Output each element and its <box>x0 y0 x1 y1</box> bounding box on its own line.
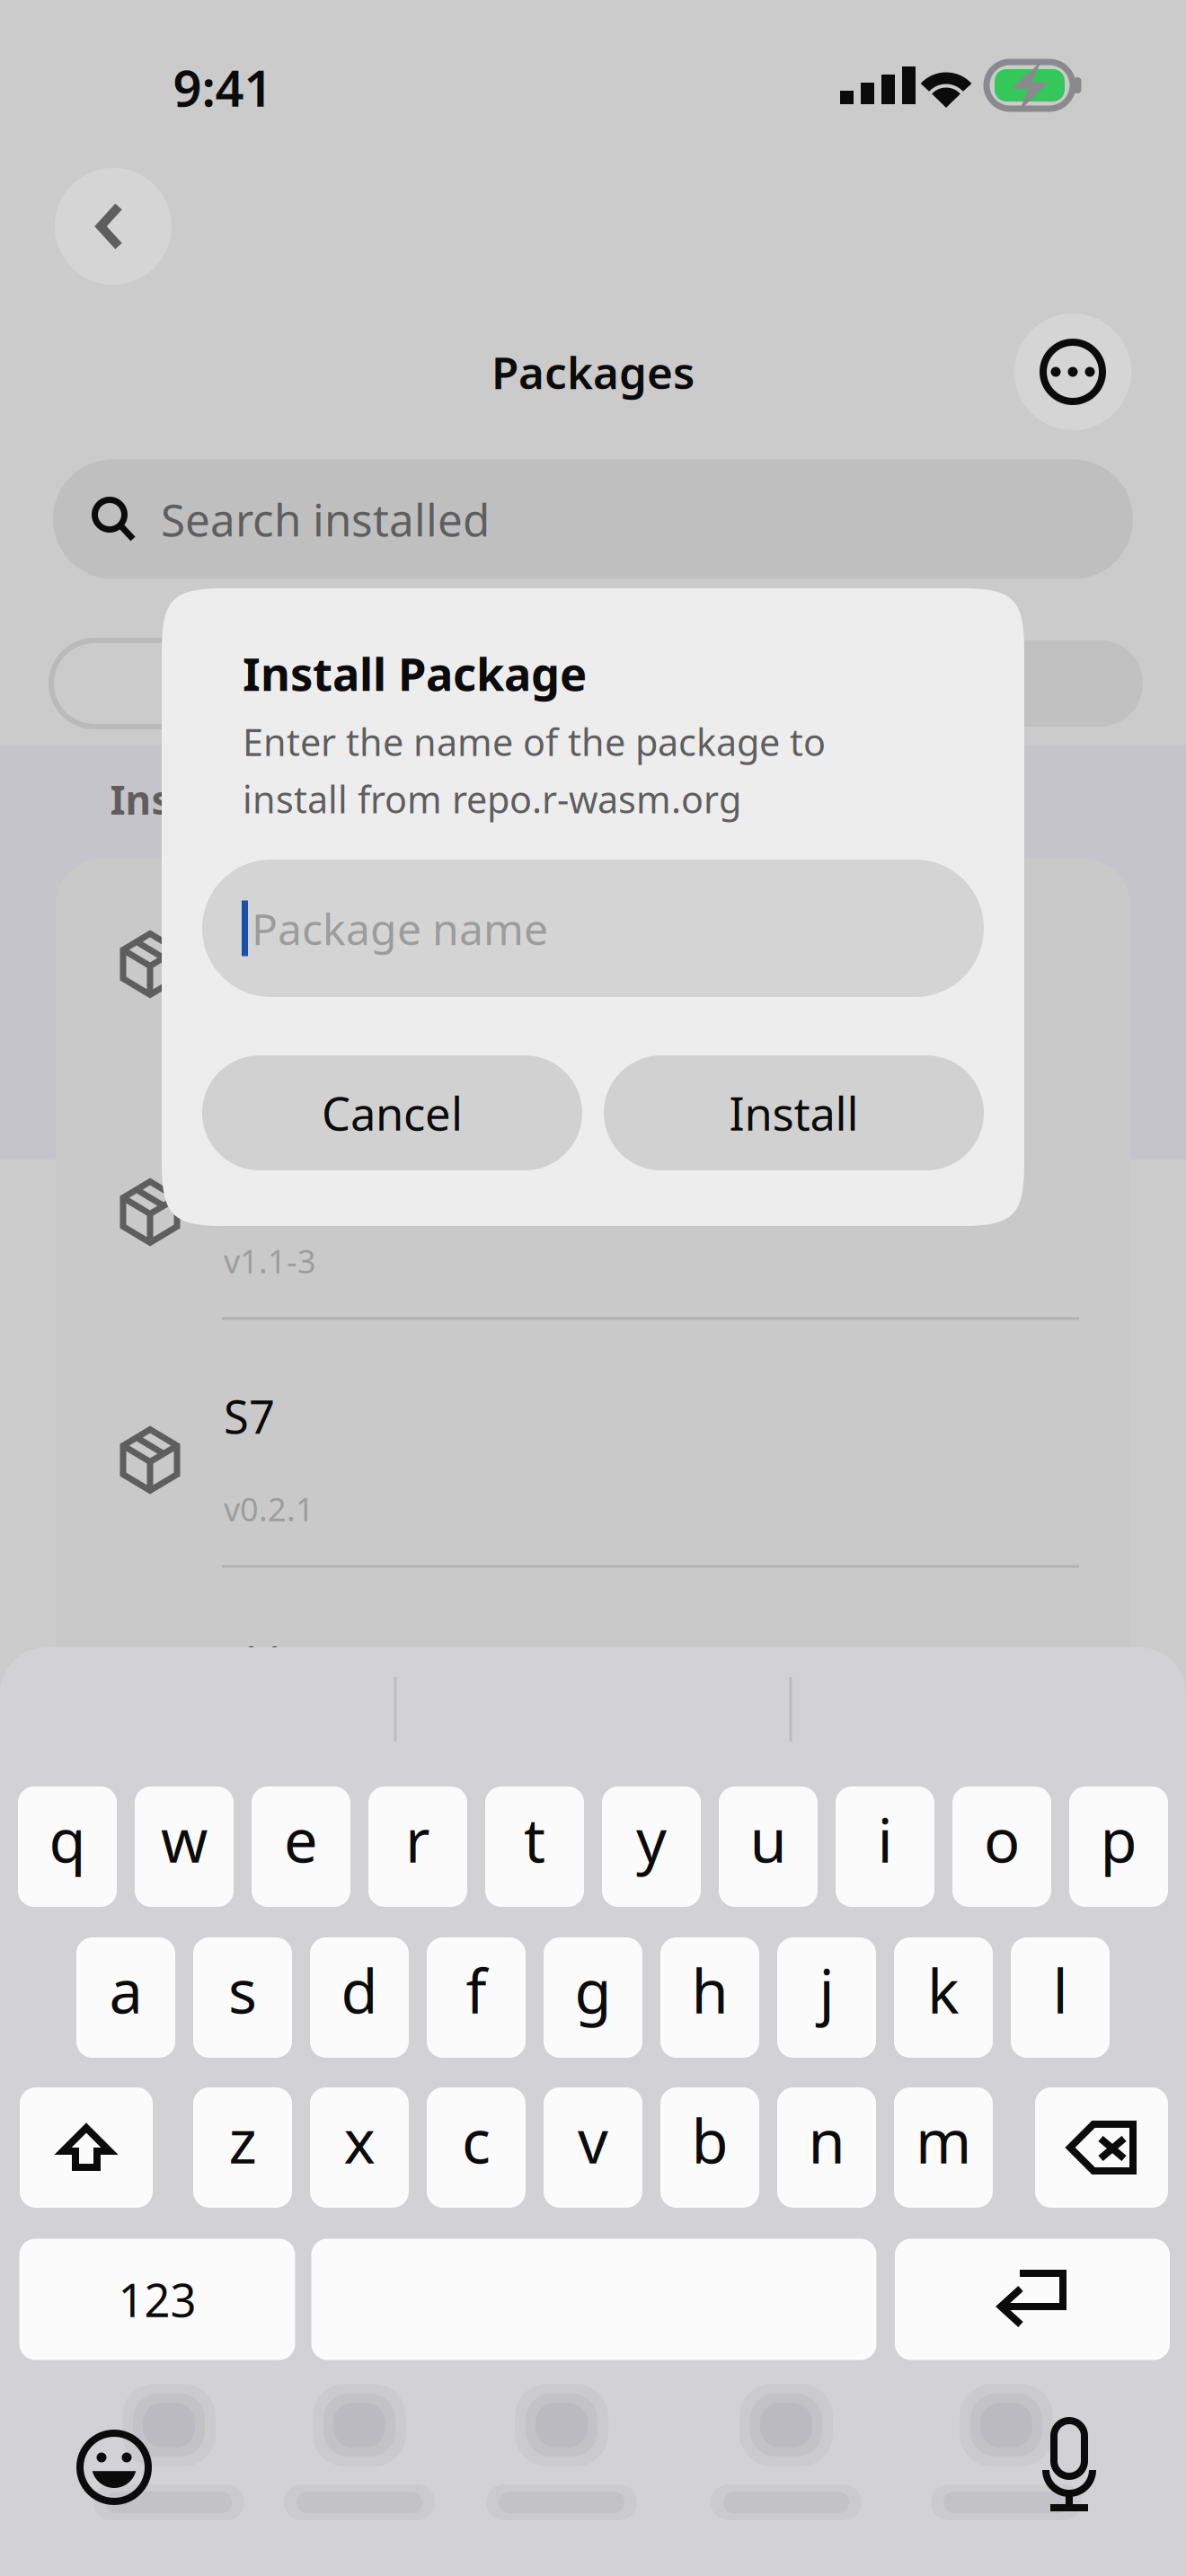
button[interactable]: g <box>544 1937 642 2058</box>
button[interactable]: b <box>660 2087 759 2208</box>
button[interactable]: Search installed <box>53 459 1133 579</box>
staticText: i <box>877 1800 893 1879</box>
staticText: u <box>750 1800 787 1879</box>
staticText: Package name <box>252 900 548 957</box>
staticText: t <box>524 1800 545 1879</box>
staticText: c <box>462 2101 491 2180</box>
staticText: s <box>228 1951 257 2030</box>
staticText: 9:41 <box>173 54 273 121</box>
staticText: 123 <box>118 2269 196 2330</box>
button[interactable]: Refresh <box>658 640 1143 727</box>
staticText: Install <box>729 1083 859 1143</box>
staticText: p <box>1100 1800 1137 1879</box>
staticText: f <box>466 1951 487 2030</box>
button[interactable]: n <box>777 2087 876 2208</box>
button[interactable]: a <box>76 1937 175 2058</box>
button[interactable]: x <box>310 2087 409 2208</box>
button[interactable]: t <box>485 1786 584 1907</box>
button[interactable]: Filter <box>51 640 465 727</box>
button[interactable]: More <box>1014 313 1131 430</box>
staticText: d <box>341 1951 378 2030</box>
button[interactable]: y <box>602 1786 701 1907</box>
button[interactable]: v <box>544 2087 642 2208</box>
staticText: Enter the name of the package to <box>243 717 826 766</box>
staticText: v0.2.1 <box>224 1487 314 1530</box>
staticText: v1.1-3 <box>224 1239 316 1282</box>
button[interactable]: ncurses <box>56 1110 1130 1358</box>
staticText: v2.28.5 <box>224 992 333 1035</box>
staticText: e <box>284 1800 318 1879</box>
staticText: a <box>109 1951 142 2030</box>
button[interactable]: k <box>894 1937 993 2058</box>
staticText: n <box>808 2101 845 2180</box>
staticText: x <box>344 2101 375 2180</box>
staticText: k <box>927 1951 960 2030</box>
staticText: z <box>229 2101 257 2180</box>
button[interactable]: q <box>18 1786 117 1907</box>
button[interactable]: l <box>1011 1937 1110 2058</box>
button[interactable]: SDL2 <box>56 862 1130 1110</box>
button[interactable]: Return <box>895 2239 1170 2360</box>
button[interactable]: w <box>135 1786 234 1907</box>
button[interactable]: r <box>368 1786 467 1907</box>
button[interactable]: Delete <box>1035 2087 1168 2208</box>
button[interactable]: m <box>894 2087 993 2208</box>
staticText: Cancel <box>322 1083 463 1143</box>
staticText: h <box>691 1951 728 2030</box>
staticText: Search installed <box>161 490 490 549</box>
staticText: q <box>49 1800 86 1879</box>
button[interactable]: Back <box>55 168 172 285</box>
staticText: g <box>575 1951 611 2030</box>
button[interactable]: S7 <box>56 1358 1130 1606</box>
staticText: w <box>161 1800 208 1879</box>
button[interactable]: zlib <box>56 1606 1130 1854</box>
staticText: o <box>984 1800 1020 1879</box>
button[interactable]: Shift <box>20 2087 153 2208</box>
button[interactable]: d <box>310 1937 409 2058</box>
staticText: m <box>916 2101 971 2180</box>
button[interactable]: 123 <box>19 2239 295 2360</box>
button[interactable]: h <box>660 1937 759 2058</box>
button[interactable]: Cancel <box>202 1055 582 1170</box>
staticText: y <box>636 1800 667 1879</box>
button[interactable]: f <box>427 1937 526 2058</box>
staticText: ncurses <box>224 1138 389 1198</box>
button[interactable]: i <box>836 1786 934 1907</box>
button[interactable]: j <box>777 1937 876 2058</box>
button[interactable]: Install <box>604 1055 984 1170</box>
button[interactable]: p <box>1069 1786 1168 1907</box>
button[interactable]: Dictate <box>1035 2415 1103 2514</box>
button[interactable]: Emoji <box>76 2430 152 2505</box>
staticText: Installed <box>110 773 283 826</box>
staticText: Packages <box>491 342 695 401</box>
staticText: v <box>578 2101 608 2180</box>
staticText: zlib <box>224 1634 296 1694</box>
staticText: install from repo.r-wasm.org <box>243 774 741 824</box>
staticText: b <box>691 2101 728 2180</box>
button[interactable]: c <box>427 2087 526 2208</box>
staticText: SDL2 <box>224 890 332 951</box>
button[interactable]: s <box>193 1937 292 2058</box>
staticText: Install Package <box>243 643 587 704</box>
staticText: l <box>1053 1951 1068 2030</box>
button[interactable]: z <box>193 2087 292 2208</box>
button[interactable]: o <box>952 1786 1051 1907</box>
button[interactable]: u <box>719 1786 818 1907</box>
staticText: j <box>819 1951 834 2030</box>
staticText: r <box>405 1800 430 1879</box>
staticText: S7 <box>224 1386 275 1446</box>
button[interactable]: e <box>252 1786 350 1907</box>
